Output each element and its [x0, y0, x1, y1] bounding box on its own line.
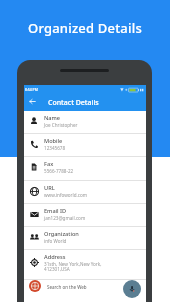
staticText: Name	[44, 114, 61, 122]
button[interactable]: Search on the Web	[24, 280, 146, 302]
button[interactable]: Mobile	[24, 134, 146, 157]
button[interactable]: Name	[24, 111, 146, 134]
staticText: info World	[44, 238, 67, 244]
staticText: jan123@gmail.com	[44, 215, 86, 221]
staticText: URL	[44, 184, 55, 192]
button[interactable]: URL	[24, 181, 146, 204]
staticText: Organization	[44, 230, 79, 238]
staticText: Mobile	[44, 137, 63, 145]
staticText: Search on the Web	[47, 284, 87, 290]
button[interactable]: Back	[28, 97, 37, 106]
button[interactable]: Voice search	[123, 280, 141, 298]
staticText: www.infoworld.com	[44, 192, 87, 198]
button[interactable]: Email ID	[24, 204, 146, 227]
staticText: Joe Christopher	[44, 122, 78, 128]
staticText: Email ID	[44, 207, 67, 215]
staticText: 5566-7788-22	[44, 168, 74, 174]
staticText: Contact Details	[48, 98, 99, 108]
staticText: Address	[44, 253, 66, 261]
staticText: 12345678	[44, 145, 66, 151]
staticText: Fax	[44, 160, 54, 168]
staticText: Organized Details	[28, 19, 142, 37]
button[interactable]: Address	[24, 250, 146, 280]
button[interactable]: Fax	[24, 157, 146, 181]
button[interactable]: Organization	[24, 227, 146, 250]
staticText: 8:54 PM	[25, 87, 38, 92]
staticText: 31sth, New York,New York, 412301,USA	[44, 261, 102, 273]
